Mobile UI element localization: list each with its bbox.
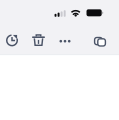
button[interactable]: More xyxy=(51,28,79,54)
button[interactable]: Delete xyxy=(24,27,52,53)
button[interactable]: Tabs xyxy=(84,25,112,51)
button[interactable]: History xyxy=(0,27,26,53)
